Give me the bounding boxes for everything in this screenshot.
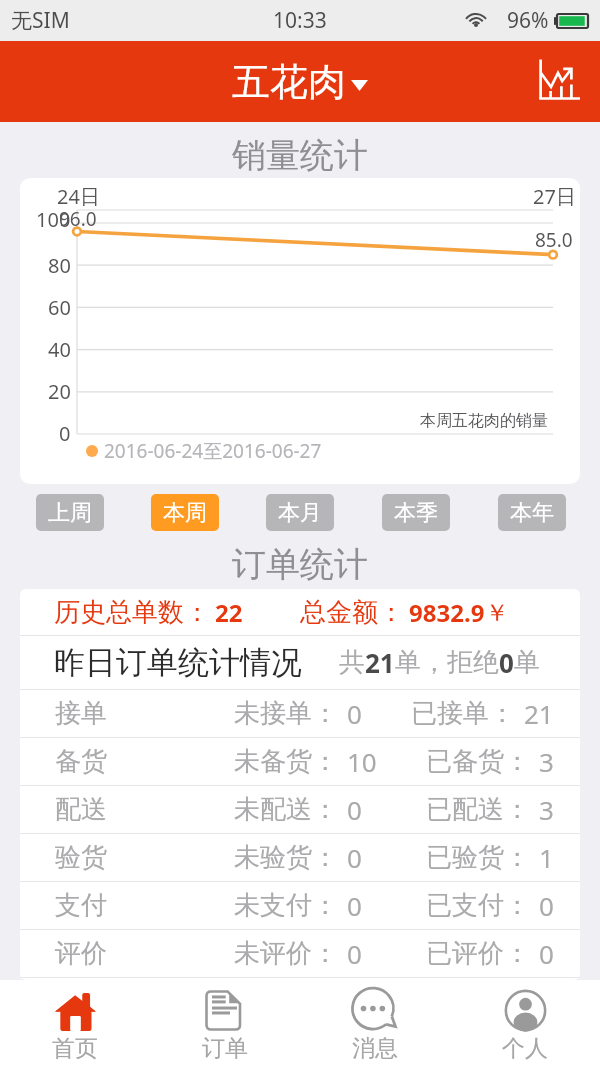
staticText: 本月 xyxy=(278,499,322,527)
staticText: 21 xyxy=(365,645,395,680)
button[interactable]: 接单 xyxy=(20,690,580,737)
staticText: 85.0 xyxy=(535,227,573,253)
staticText: 已备货： xyxy=(426,745,530,778)
staticText: 本年 xyxy=(510,499,554,527)
staticText: 无SIM xyxy=(11,6,70,35)
staticText: 100 xyxy=(36,206,71,233)
staticText: 五花肉 xyxy=(232,58,346,106)
staticText: 总金额： xyxy=(300,596,404,629)
staticText: 80 xyxy=(48,252,71,279)
staticText: 个人 xyxy=(502,1034,548,1063)
staticText: 1 xyxy=(539,840,554,875)
staticText: 0 xyxy=(347,888,362,923)
button[interactable]: 订单 xyxy=(150,980,300,1067)
staticText: 接单 xyxy=(55,697,107,730)
staticText: 本季 xyxy=(394,499,438,527)
button[interactable]: 评价 xyxy=(20,930,580,977)
staticText: 未验货： xyxy=(234,841,338,874)
button[interactable]: 本季 xyxy=(382,494,450,531)
button[interactable]: 备货 xyxy=(20,738,580,785)
staticText: 2016-06-24至2016-06-27 xyxy=(104,438,322,464)
staticText: 60 xyxy=(48,294,71,321)
staticText: 未备货： xyxy=(234,745,338,778)
button[interactable]: 支付 xyxy=(20,882,580,929)
staticText: 40 xyxy=(48,336,71,363)
staticText: 验货 xyxy=(55,841,107,874)
button[interactable]: 本月 xyxy=(266,494,334,531)
staticText: 共 xyxy=(339,646,365,679)
staticText: 评价 xyxy=(55,937,107,970)
staticText: ￥ xyxy=(485,598,509,628)
staticText: 21 xyxy=(524,696,554,731)
button[interactable]: 上周 xyxy=(36,494,104,531)
button[interactable]: 销量统计 xyxy=(533,53,585,105)
staticText: 上周 xyxy=(48,499,92,527)
staticText: 未配送： xyxy=(234,793,338,826)
staticText: 0 xyxy=(347,840,362,875)
button[interactable]: 本年 xyxy=(498,494,566,531)
staticText: 已验货： xyxy=(426,841,530,874)
staticText: 96% xyxy=(507,6,549,35)
staticText: 9832.9 xyxy=(409,596,485,629)
staticText: 10 xyxy=(347,744,377,779)
staticText: 已评价： xyxy=(426,937,530,970)
staticText: 0 xyxy=(59,420,71,447)
staticText: 支付 xyxy=(55,889,107,922)
staticText: 0 xyxy=(499,645,514,680)
staticText: 单， xyxy=(395,646,447,679)
staticText: 20 xyxy=(48,378,71,405)
staticText: 24日 xyxy=(57,183,100,210)
staticText: 0 xyxy=(539,888,554,923)
staticText: 10:33 xyxy=(273,6,327,35)
staticText: 0 xyxy=(347,696,362,731)
button[interactable]: 消息 xyxy=(300,980,450,1067)
staticText: 未支付： xyxy=(234,889,338,922)
staticText: 备货 xyxy=(55,745,107,778)
staticText: 已支付： xyxy=(426,889,530,922)
button[interactable]: 本周 xyxy=(151,494,219,531)
staticText: 昨日订单统计情况 xyxy=(54,643,302,682)
button[interactable]: 首页 xyxy=(0,980,150,1067)
staticText: 0 xyxy=(539,936,554,971)
staticText: 未接单： xyxy=(234,697,338,730)
staticText: 本周 xyxy=(163,499,207,527)
staticText: 96.0 xyxy=(59,206,97,232)
button[interactable]: 验货 xyxy=(20,834,580,881)
staticText: 22 xyxy=(215,596,243,629)
staticText: 0 xyxy=(347,936,362,971)
staticText: 首页 xyxy=(52,1034,98,1063)
button[interactable]: 配送 xyxy=(20,786,580,833)
staticText: 3 xyxy=(539,792,554,827)
staticText: 拒绝 xyxy=(447,646,499,679)
staticText: 本周五花肉的销量 xyxy=(420,411,548,431)
staticText: 27日 xyxy=(533,183,576,210)
staticText: 0 xyxy=(347,792,362,827)
staticText: 销量统计 xyxy=(232,134,368,174)
staticText: 订单 xyxy=(202,1034,248,1063)
staticText: 3 xyxy=(539,744,554,779)
staticText: 未评价： xyxy=(234,937,338,970)
button[interactable]: 五花肉 xyxy=(232,58,368,106)
staticText: 已接单： xyxy=(411,697,515,730)
staticText: 已配送： xyxy=(426,793,530,826)
staticText: 单 xyxy=(514,646,540,679)
staticText: 配送 xyxy=(55,793,107,826)
staticText: 历史总单数： xyxy=(54,596,210,629)
staticText: 订单统计 xyxy=(232,543,368,583)
button[interactable]: 个人 xyxy=(450,980,600,1067)
staticText: 消息 xyxy=(352,1034,398,1063)
